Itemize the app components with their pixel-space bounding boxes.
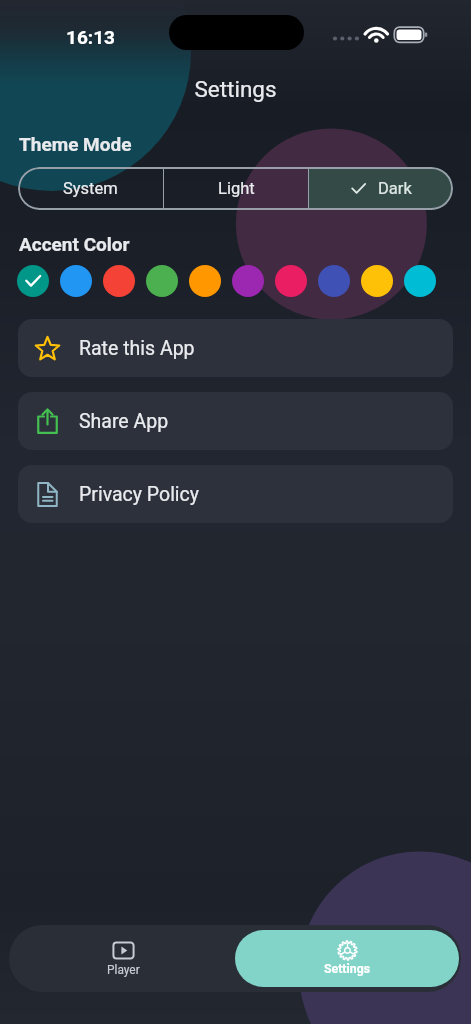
staticText: Accent Color — [19, 233, 130, 255]
staticText: Player — [107, 963, 140, 977]
button[interactable]: Accent color 9 — [361, 265, 393, 297]
button[interactable]: Accent color 3 — [103, 265, 135, 297]
button[interactable]: Accent color 4 — [146, 265, 178, 297]
staticText: Light — [218, 179, 255, 198]
button[interactable]: Privacy Policy — [18, 465, 453, 523]
button[interactable]: Accent color 7 — [275, 265, 307, 297]
staticText: Theme Mode — [19, 133, 132, 155]
button[interactable]: System — [18, 167, 163, 210]
button[interactable]: Dark — [309, 167, 453, 210]
button[interactable]: Settings — [235, 930, 459, 987]
staticText: Share App — [79, 410, 169, 433]
staticText: Settings — [0, 76, 471, 102]
button[interactable]: Accent color 2 — [60, 265, 92, 297]
staticText: Settings — [324, 962, 371, 976]
button[interactable]: Light — [164, 167, 308, 210]
staticText: Dark — [378, 179, 412, 198]
button[interactable]: Accent color 8 — [318, 265, 350, 297]
button[interactable]: Share App — [18, 392, 453, 450]
button[interactable]: Accent color 5 — [189, 265, 221, 297]
staticText: 16:13 — [66, 26, 115, 48]
staticText: Privacy Policy — [79, 483, 200, 506]
button[interactable]: Accent color 10 — [404, 265, 436, 297]
button[interactable]: Accent color 6 — [232, 265, 264, 297]
button[interactable]: Player — [11, 930, 235, 987]
button[interactable]: Rate this App — [18, 319, 453, 377]
button[interactable]: Accent color 1 — [17, 265, 49, 297]
staticText: System — [63, 179, 118, 198]
staticText: Rate this App — [79, 337, 195, 360]
